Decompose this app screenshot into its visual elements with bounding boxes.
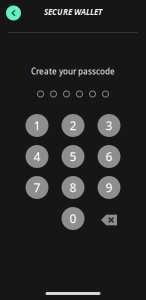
staticText: 6 (105, 148, 112, 164)
staticText: 3 (105, 117, 112, 133)
button[interactable]: 5 (61, 145, 84, 168)
staticText: 7 (33, 179, 40, 195)
button[interactable]: 4 (25, 145, 48, 168)
staticText: SECURE WALLET (44, 7, 102, 17)
staticText: 1 (33, 117, 40, 133)
button[interactable]: 0 (61, 207, 84, 230)
button[interactable]: 3 (97, 114, 120, 137)
staticText: 8 (69, 179, 76, 195)
staticText: 4 (33, 148, 40, 164)
button[interactable]: 2 (61, 114, 84, 137)
button[interactable]: 1 (25, 114, 48, 137)
button[interactable]: 8 (61, 176, 84, 199)
button[interactable]: Delete (97, 207, 120, 230)
staticText: 0 (69, 210, 76, 226)
button[interactable]: 9 (97, 176, 120, 199)
button[interactable]: 6 (97, 145, 120, 168)
staticText: 2 (69, 117, 76, 133)
button[interactable]: 7 (25, 176, 48, 199)
staticText: Create your passcode (31, 66, 115, 77)
button[interactable]: Back (6, 5, 21, 20)
staticText: 9 (105, 179, 112, 195)
staticText: 5 (69, 148, 76, 164)
